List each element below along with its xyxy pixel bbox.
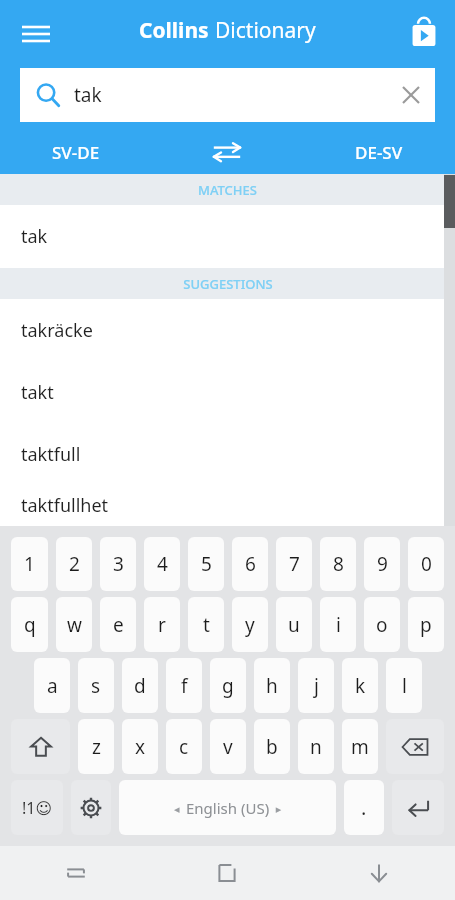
other: Search: [36, 83, 60, 107]
staticText: 4: [157, 551, 168, 577]
staticText: l: [402, 673, 407, 699]
button[interactable]: c: [166, 719, 202, 774]
button[interactable]: Menu: [10, 8, 62, 60]
staticText: tak: [74, 82, 102, 108]
button[interactable]: Shift: [11, 719, 70, 774]
button[interactable]: r: [144, 597, 180, 652]
button[interactable]: Enter: [392, 780, 444, 835]
staticText: n: [310, 734, 322, 760]
button[interactable]: a: [34, 658, 70, 713]
button[interactable]: e: [100, 597, 136, 652]
staticText: t: [203, 612, 210, 638]
button[interactable]: tak: [0, 205, 455, 268]
staticText: !1☺: [22, 797, 53, 819]
button[interactable]: 5: [188, 537, 224, 591]
staticText: z: [92, 734, 101, 760]
button[interactable]: 2: [56, 537, 92, 591]
button[interactable]: f: [166, 658, 202, 713]
staticText: taktfullhet: [21, 493, 109, 518]
button[interactable]: DE-SV: [303, 130, 455, 174]
button[interactable]: z: [78, 719, 114, 774]
staticText: x: [135, 734, 146, 760]
button[interactable]: k: [342, 658, 378, 713]
button[interactable]: o: [364, 597, 400, 652]
button[interactable]: ◂: [119, 780, 336, 835]
staticText: i: [336, 612, 341, 638]
button[interactable]: w: [56, 597, 92, 652]
staticText: ▸: [270, 801, 282, 816]
button[interactable]: Hide keyboard: [303, 846, 455, 900]
staticText: e: [113, 612, 124, 638]
staticText: p: [420, 612, 432, 638]
staticText: takräcke: [21, 318, 93, 343]
button[interactable]: takräcke: [0, 299, 455, 361]
button[interactable]: g: [210, 658, 246, 713]
button[interactable]: n: [298, 719, 334, 774]
staticText: y: [245, 612, 255, 638]
staticText: ◂: [174, 801, 186, 816]
staticText: Collins: [139, 16, 215, 45]
staticText: s: [91, 673, 101, 699]
button[interactable]: l: [386, 658, 422, 713]
button[interactable]: Switch input method: [0, 846, 151, 900]
staticText: v: [223, 734, 233, 760]
staticText: SV-DE: [52, 141, 100, 164]
button[interactable]: q: [11, 597, 48, 652]
button[interactable]: takt: [0, 361, 455, 423]
button[interactable]: SV-DE: [0, 130, 151, 174]
staticText: g: [222, 673, 234, 699]
staticText: 6: [245, 551, 256, 577]
staticText: taktfull: [21, 442, 81, 467]
button[interactable]: h: [254, 658, 290, 713]
button[interactable]: Home: [151, 846, 303, 900]
button[interactable]: 4: [144, 537, 180, 591]
button[interactable]: 3: [100, 537, 136, 591]
staticText: English (US): [186, 798, 270, 818]
staticText: h: [266, 673, 278, 699]
staticText: 2: [69, 551, 80, 577]
button[interactable]: 0: [408, 537, 444, 591]
button[interactable]: taktfull: [0, 423, 455, 485]
button[interactable]: Google Play: [399, 6, 449, 56]
button[interactable]: !1☺: [11, 780, 63, 835]
staticText: u: [288, 612, 300, 638]
staticText: 1: [24, 551, 35, 577]
button[interactable]: p: [408, 597, 444, 652]
button[interactable]: v: [210, 719, 246, 774]
button[interactable]: Settings: [71, 780, 111, 835]
button[interactable]: t: [188, 597, 224, 652]
staticText: 8: [333, 551, 344, 577]
staticText: c: [179, 734, 189, 760]
staticText: DE-SV: [355, 141, 403, 164]
button[interactable]: i: [320, 597, 356, 652]
staticText: 5: [201, 551, 212, 577]
button[interactable]: 7: [276, 537, 312, 591]
button[interactable]: y: [232, 597, 268, 652]
staticText: r: [158, 612, 166, 638]
button[interactable]: Clear: [387, 71, 435, 119]
staticText: 7: [289, 551, 300, 577]
staticText: d: [134, 673, 146, 699]
button[interactable]: d: [122, 658, 158, 713]
staticText: f: [181, 673, 188, 699]
staticText: .: [361, 794, 367, 821]
button[interactable]: 1: [11, 537, 48, 591]
button[interactable]: s: [78, 658, 114, 713]
button[interactable]: u: [276, 597, 312, 652]
button[interactable]: .: [344, 780, 384, 835]
button[interactable]: j: [298, 658, 334, 713]
button[interactable]: Swap languages: [151, 130, 303, 174]
staticText: SUGGESTIONS: [183, 275, 273, 293]
button[interactable]: taktfullhet: [0, 485, 455, 526]
staticText: b: [266, 734, 278, 760]
button[interactable]: m: [342, 719, 378, 774]
button[interactable]: 9: [364, 537, 400, 591]
button[interactable]: Backspace: [386, 719, 444, 774]
button[interactable]: 8: [320, 537, 356, 591]
button[interactable]: x: [122, 719, 158, 774]
staticText: w: [67, 612, 82, 638]
button[interactable]: Search: [20, 68, 435, 122]
button[interactable]: b: [254, 719, 290, 774]
staticText: q: [24, 612, 36, 638]
button[interactable]: 6: [232, 537, 268, 591]
